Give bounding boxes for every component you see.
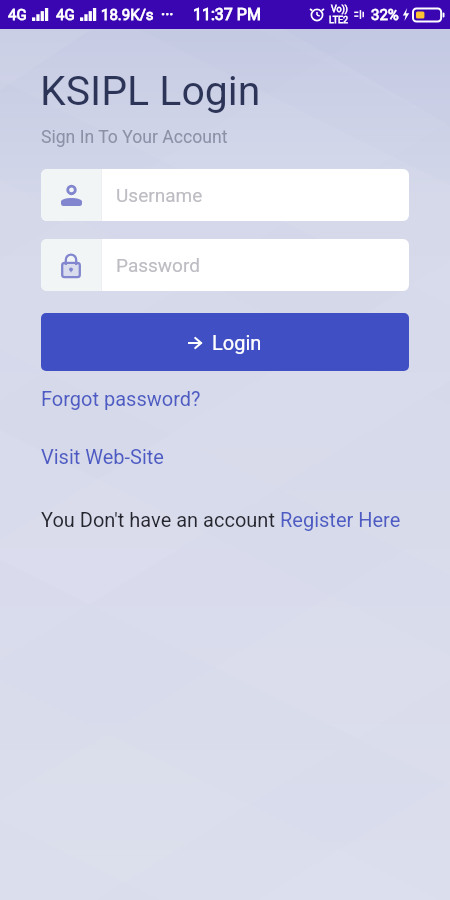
staticText: 32%: [371, 6, 399, 24]
staticText: Vo)): [331, 4, 348, 15]
staticText: Sign In To Your Account: [41, 127, 228, 148]
staticText: Password: [116, 254, 200, 276]
button[interactable]: Register Here: [280, 508, 401, 531]
staticText: 11:37 PM: [193, 5, 261, 24]
staticText: 18.9K/s: [101, 6, 154, 24]
staticText: Username: [116, 184, 203, 206]
staticText: Register Here: [280, 508, 401, 531]
staticText: 4G: [56, 6, 75, 24]
staticText: Forgot password?: [41, 387, 201, 410]
staticText: KSIPL Login: [40, 67, 261, 115]
staticText: ···: [161, 5, 174, 24]
button[interactable]: Login: [41, 313, 409, 371]
button[interactable]: Password: [41, 239, 409, 291]
staticText: You Don't have an account: [41, 508, 280, 531]
staticText: Visit Web-Site: [41, 445, 164, 468]
staticText: 4G: [8, 6, 27, 24]
button[interactable]: User: [41, 169, 409, 221]
staticText: LTE2: [329, 15, 349, 26]
staticText: Login: [212, 331, 262, 354]
other: User: [61, 185, 82, 206]
button[interactable]: Forgot password?: [33, 379, 209, 418]
other: Password: [61, 252, 81, 278]
button[interactable]: Visit Web-Site: [33, 437, 172, 476]
